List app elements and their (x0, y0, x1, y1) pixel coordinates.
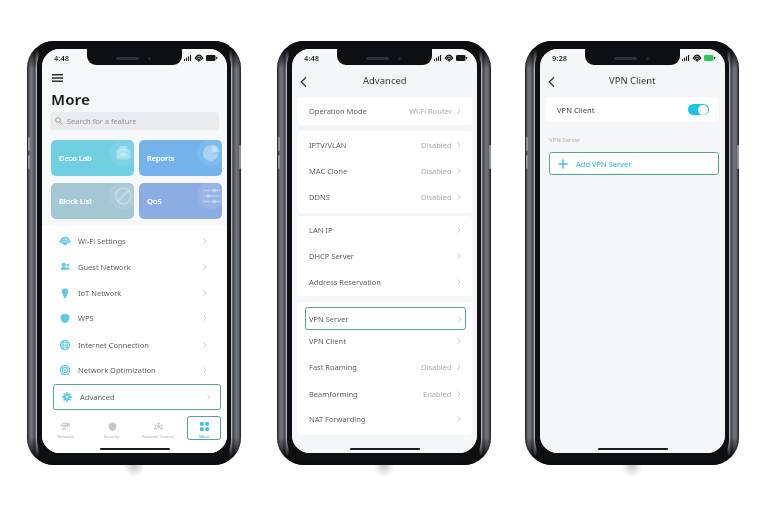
button[interactable]: Parental Control (141, 416, 175, 440)
button[interactable]: MAC Clone (297, 158, 472, 184)
staticText: NAT Forwarding (309, 414, 366, 424)
staticText: Parental Control (142, 434, 175, 440)
staticText: IPTV/VLAN (309, 140, 347, 150)
staticText: Wi-Fi Settings (78, 236, 126, 246)
button[interactable]: Network (48, 416, 83, 440)
staticText: Reports (147, 153, 175, 163)
staticText: Deco Lab (59, 153, 92, 163)
staticText: 4:48 (304, 53, 319, 63)
staticText: Disabled (421, 166, 452, 176)
button[interactable]: Wi-Fi Settings (42, 228, 227, 254)
button[interactable]: LAN IP (297, 217, 472, 243)
button[interactable]: VPN Client (546, 97, 719, 122)
button[interactable]: VPN Server (305, 307, 466, 330)
staticText: Internet Connection (78, 340, 149, 350)
staticText: More (51, 89, 90, 109)
button[interactable]: Beamforming (297, 381, 472, 407)
staticText: QoS (147, 196, 162, 206)
button[interactable]: Back (295, 73, 312, 90)
staticText: Security (104, 434, 120, 440)
staticText: Block List (59, 196, 93, 206)
button[interactable]: Internet Connection (42, 332, 227, 358)
staticText: VPN Server (549, 136, 581, 144)
staticText: Search for a feature (67, 116, 137, 126)
staticText: 9:28 (552, 53, 567, 63)
staticText: Operation Mode (309, 106, 367, 116)
staticText: Advanced (363, 74, 407, 87)
staticText: Network Optimization (78, 365, 156, 375)
staticText: WPS (78, 313, 94, 323)
button[interactable]: Block List (51, 183, 134, 219)
button[interactable]: NAT Forwarding (297, 406, 472, 432)
staticText: VPN Client (609, 74, 656, 87)
button[interactable]: WPS (42, 305, 227, 331)
button[interactable]: VPN Client (297, 328, 472, 354)
staticText: LAN IP (309, 225, 333, 235)
staticText: VPN Client (557, 105, 595, 115)
button[interactable]: Search for a feature (50, 112, 219, 130)
staticText: Advanced (80, 392, 115, 402)
button[interactable]: DHCP Server (297, 243, 472, 269)
staticText: Add VPN Server (576, 159, 632, 169)
staticText: Guest Network (78, 262, 131, 272)
staticText: Enabled (423, 389, 452, 399)
staticText: MAC Clone (309, 166, 348, 176)
staticText: Wi-Fi Router (409, 106, 452, 116)
button[interactable]: Address Reservation (297, 269, 472, 295)
staticText: Disabled (421, 192, 452, 202)
button[interactable]: More (187, 416, 221, 440)
staticText: DDNS (309, 192, 330, 202)
button[interactable]: QoS (139, 183, 222, 219)
staticText: Network (57, 434, 74, 440)
button[interactable]: Network Optimization (42, 357, 227, 383)
button[interactable]: DDNS (297, 184, 472, 210)
staticText: Disabled (421, 362, 452, 372)
staticText: 4:48 (54, 53, 69, 63)
button[interactable]: IPTV/VLAN (297, 132, 472, 158)
button[interactable]: Operation Mode (297, 98, 472, 124)
staticText: Beamforming (309, 389, 358, 399)
button[interactable]: Back (543, 73, 560, 90)
button[interactable]: Add VPN Server (549, 152, 719, 175)
button[interactable]: Advanced (53, 384, 221, 410)
staticText: IoT Network (78, 288, 122, 298)
button[interactable]: IoT Network (42, 280, 227, 306)
staticText: VPN Server (309, 314, 349, 324)
button[interactable]: Deco Lab (51, 140, 134, 176)
staticText: Address Reservation (309, 277, 381, 287)
staticText: DHCP Server (309, 251, 354, 261)
staticText: Fast Roaming (309, 362, 357, 372)
button[interactable]: Security (95, 416, 129, 440)
staticText: VPN Client (309, 336, 346, 346)
button[interactable]: Guest Network (42, 254, 227, 280)
staticText: Disabled (421, 140, 452, 150)
button[interactable]: Menu (51, 71, 64, 84)
button[interactable]: Reports (139, 140, 222, 176)
staticText: More (199, 434, 210, 440)
button[interactable]: Fast Roaming (297, 354, 472, 380)
